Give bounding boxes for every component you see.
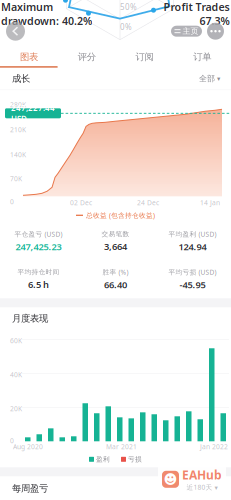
button[interactable]: 订单 xyxy=(173,48,231,68)
staticText: Maximum drawdown: 40.2% xyxy=(1,0,92,28)
staticText: 平均亏损 (USD) xyxy=(168,268,216,277)
staticText: 50% xyxy=(120,2,137,12)
staticText: 交易笔数 xyxy=(101,230,129,238)
staticText: 60K xyxy=(10,336,22,345)
staticText: Jan 2022 xyxy=(200,442,228,451)
staticText: 70K xyxy=(10,174,22,183)
staticText: 210K xyxy=(10,125,26,134)
staticText: 3,664 xyxy=(104,240,127,253)
staticText: ▾ xyxy=(217,75,220,82)
staticText: 平均盈利 (USD) xyxy=(168,230,216,239)
staticText: 全部 xyxy=(199,74,215,84)
staticText: 14 Jan xyxy=(200,198,220,207)
staticText: 成长 xyxy=(12,73,30,84)
staticText: 平均持仓时间 xyxy=(17,268,59,276)
staticText: Mar 2021 xyxy=(106,442,137,451)
staticText: 图表 xyxy=(20,51,38,63)
staticText: 24 Dec xyxy=(137,198,159,207)
staticText: 0 xyxy=(10,436,14,445)
staticText: 0% xyxy=(120,22,132,32)
staticText: ☻ xyxy=(163,472,177,487)
button[interactable]: 订阅 xyxy=(115,48,173,68)
staticText: Aug 2020 xyxy=(13,442,43,451)
staticText: 247,227.44 USD xyxy=(11,103,55,124)
button[interactable]: 主页 xyxy=(171,26,202,37)
staticText: EAHub xyxy=(182,467,222,483)
staticText: 140K xyxy=(10,150,26,159)
staticText: 40K xyxy=(10,370,22,379)
button[interactable]: 全部 xyxy=(199,74,220,84)
staticText: Profit Trades 67.3% xyxy=(163,0,229,28)
staticText: 近180天 ▾ xyxy=(186,483,217,492)
staticText: 胜率 (%) xyxy=(102,268,128,277)
staticText: 主页 xyxy=(182,26,198,36)
staticText: 评分 xyxy=(78,51,96,63)
staticText: 02 Dec xyxy=(70,198,92,207)
button[interactable]: Back xyxy=(6,22,25,41)
staticText: 盈利 xyxy=(96,455,110,463)
staticText: -45.95 xyxy=(179,278,205,291)
staticText: 6.5 h xyxy=(28,278,49,291)
staticText: 247,425.23 xyxy=(15,240,61,253)
staticText: 20K xyxy=(10,404,22,413)
staticText: 亏损 xyxy=(128,455,142,463)
staticText: 280K xyxy=(10,100,26,109)
staticText: 订单 xyxy=(193,51,211,63)
staticText: 平仓盈亏 (USD) xyxy=(14,230,62,239)
button[interactable]: 图表 xyxy=(0,48,58,68)
button[interactable]: 评分 xyxy=(58,48,116,68)
button[interactable]: ☻ xyxy=(158,465,226,494)
staticText: 124.94 xyxy=(178,240,206,253)
staticText: 总收益 (包含持仓收益) xyxy=(86,211,155,220)
button[interactable]: More options xyxy=(207,23,224,40)
staticText: 订阅 xyxy=(135,51,153,63)
staticText: 66.40 xyxy=(104,278,127,291)
staticText: 每周盈亏 xyxy=(12,483,48,494)
staticText: 0 xyxy=(10,197,14,206)
staticText: 月度表现 xyxy=(12,313,48,324)
